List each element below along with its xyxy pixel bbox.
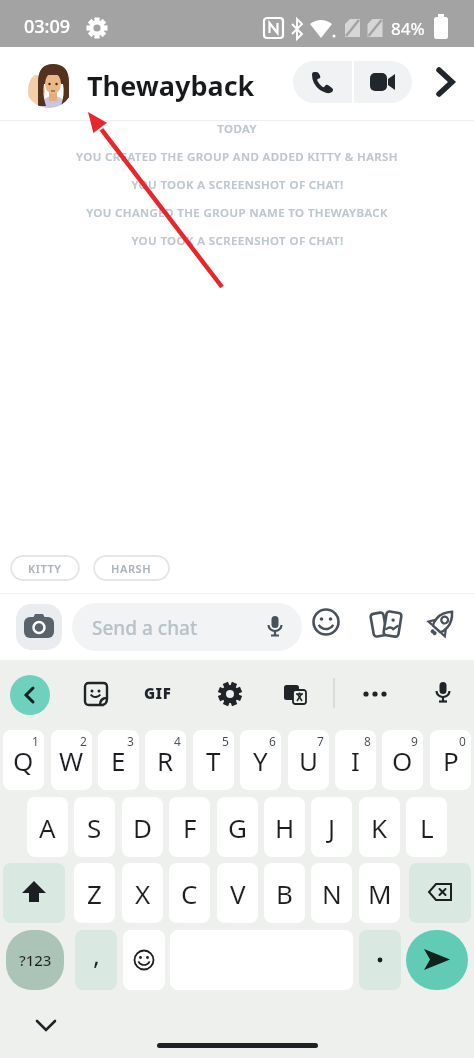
button[interactable]	[35, 1016, 59, 1040]
button[interactable]	[277, 676, 313, 712]
button[interactable]	[430, 69, 462, 101]
staticText: GIF	[144, 683, 172, 703]
staticText: 03:09	[24, 14, 71, 39]
button[interactable]: Z	[74, 863, 115, 923]
button[interactable]: N	[311, 863, 352, 923]
button[interactable]: U	[288, 730, 329, 790]
button[interactable]: Y	[240, 730, 281, 790]
button[interactable]	[424, 675, 462, 713]
staticText: H	[275, 810, 295, 845]
staticText: Thewayback	[87, 67, 255, 104]
staticText: K	[371, 810, 388, 845]
staticText: N	[322, 876, 342, 911]
button[interactable]	[78, 676, 114, 712]
staticText: YOU TOOK A SCREENSHOT OF CHAT!	[131, 233, 344, 249]
staticText: YOU CREATED THE GROUP AND ADDED KITTY & …	[76, 149, 398, 165]
button[interactable]: KITTY	[10, 555, 80, 581]
staticText: W	[59, 743, 84, 778]
staticText: 84%	[391, 17, 425, 40]
button[interactable]: K	[359, 797, 400, 857]
staticText: G	[228, 810, 247, 845]
staticText: YOU CHANGED THE GROUP NAME TO THEWAYBACK	[86, 205, 388, 221]
staticText: U	[299, 743, 319, 778]
button[interactable]	[356, 675, 394, 713]
staticText: KITTY	[28, 561, 62, 576]
staticText: M	[368, 876, 392, 911]
staticText: V	[230, 876, 246, 911]
button[interactable]	[25, 60, 73, 108]
button[interactable]	[123, 930, 165, 990]
button[interactable]: H	[264, 797, 305, 857]
button[interactable]	[308, 604, 344, 640]
button[interactable]	[211, 675, 249, 713]
button[interactable]	[3, 863, 65, 923]
staticText: A	[39, 810, 56, 845]
button[interactable]	[369, 607, 405, 643]
staticText: ,	[93, 937, 100, 972]
staticText: 6	[269, 733, 276, 749]
staticText: 1	[32, 733, 39, 749]
button[interactable]: J	[311, 797, 352, 857]
button[interactable]	[16, 604, 62, 650]
staticText: R	[157, 743, 174, 778]
staticText: 3	[127, 733, 134, 749]
staticText: F	[183, 810, 197, 845]
staticText: Q	[13, 743, 34, 778]
staticText: O	[392, 743, 413, 778]
button[interactable]: P	[430, 730, 471, 790]
staticText: Send a chat	[92, 615, 198, 641]
button[interactable]	[10, 675, 50, 715]
button[interactable]: F	[169, 797, 210, 857]
staticText: C	[181, 876, 198, 911]
staticText: YOU TOOK A SCREENSHOT OF CHAT!	[131, 177, 344, 193]
staticText: TODAY	[217, 121, 257, 137]
button[interactable]	[406, 930, 468, 990]
button[interactable]: ?123	[6, 930, 64, 990]
staticText: J	[328, 810, 336, 845]
staticText: I	[351, 743, 360, 778]
button[interactable]: Q	[3, 730, 44, 790]
button[interactable]	[359, 930, 401, 990]
button[interactable]: O	[382, 730, 423, 790]
button[interactable]: W	[51, 730, 92, 790]
button[interactable]: G	[217, 797, 258, 857]
staticText: B	[276, 876, 293, 911]
staticText: 8	[364, 733, 371, 749]
staticText: 4	[174, 733, 181, 749]
staticText: 7	[317, 733, 324, 749]
staticText: 0	[459, 733, 466, 749]
button[interactable]: C	[169, 863, 210, 923]
button[interactable]: R	[145, 730, 186, 790]
button[interactable]	[354, 61, 412, 103]
button[interactable]	[293, 61, 352, 103]
button[interactable]: Send a chat	[72, 603, 302, 651]
staticText: 9	[411, 733, 418, 749]
staticText: Z	[87, 876, 102, 911]
button[interactable]	[424, 605, 460, 641]
button[interactable]: D	[122, 797, 163, 857]
button[interactable]: A	[27, 797, 68, 857]
staticText: L	[420, 810, 434, 845]
button[interactable]: I	[335, 730, 376, 790]
button[interactable]: M	[359, 863, 400, 923]
staticText: P	[443, 743, 459, 778]
button[interactable]: B	[264, 863, 305, 923]
button[interactable]: S	[74, 797, 115, 857]
staticText: 2	[80, 733, 87, 749]
button[interactable]: V	[217, 863, 258, 923]
staticText: S	[87, 810, 102, 845]
staticText: 5	[222, 733, 229, 749]
button[interactable]: ,	[75, 930, 117, 990]
staticText: X	[135, 876, 151, 911]
staticText: ?123	[19, 950, 52, 970]
staticText: E	[111, 743, 126, 778]
staticText: T	[206, 743, 221, 778]
button[interactable]: HARSH	[93, 555, 170, 581]
staticText: D	[133, 810, 152, 845]
button[interactable]: T	[193, 730, 234, 790]
button[interactable]: L	[406, 797, 447, 857]
button[interactable]: X	[122, 863, 163, 923]
button[interactable]	[409, 863, 471, 923]
button[interactable]: E	[98, 730, 139, 790]
